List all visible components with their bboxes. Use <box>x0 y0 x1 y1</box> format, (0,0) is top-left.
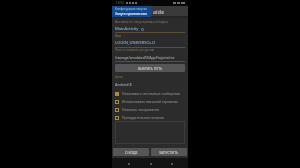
button[interactable]: ВЫБРАТЬ ПУТЬ <box>115 64 185 72</box>
staticText: Запуск приложения <box>115 11 147 15</box>
staticText: Показывать системные сообщения <box>122 91 181 96</box>
staticText: /storage/emulated/0/AppProjects/res <box>115 55 175 60</box>
staticText: 14:52 <box>116 1 124 5</box>
staticText: ЗАПУСТИТЬ <box>159 150 179 155</box>
button[interactable]: Home <box>146 159 155 168</box>
button[interactable]: Показать логирование <box>115 106 185 113</box>
staticText: LOGIN_UNIVERSO+O <box>115 40 156 46</box>
button[interactable]: Back <box>124 159 133 168</box>
staticText: Принудительное питание <box>122 115 165 120</box>
staticText: Использовать внешний терминал <box>122 99 179 104</box>
button[interactable]: Принудительное питание <box>115 114 185 121</box>
staticText: aide <box>153 8 165 15</box>
staticText: Вид <box>115 34 121 38</box>
staticText: ВЫБРАТЬ ПУТЬ <box>138 66 163 71</box>
staticText: О КОДЕ <box>125 150 138 155</box>
staticText: Android 8 <box>115 82 132 87</box>
staticText: MainActivity <box>115 26 139 32</box>
button[interactable]: Recents <box>167 159 176 168</box>
button[interactable]: Показывать системные сообщения <box>115 90 185 97</box>
staticText: Путь к готовым ресурсам <box>115 48 155 52</box>
staticText: Цель <box>115 75 123 79</box>
staticText: Показать логирование <box>122 107 160 112</box>
button[interactable]: Конфигурация запуска <box>112 6 151 17</box>
button[interactable]: Использовать внешний терминал <box>115 98 185 105</box>
staticText: Активность запускаемая отладка <box>115 19 168 23</box>
button[interactable]: ЗАПУСТИТЬ <box>151 148 187 156</box>
button[interactable]: О КОДЕ <box>113 148 149 156</box>
staticText: Конфигурация запуска <box>115 7 147 11</box>
